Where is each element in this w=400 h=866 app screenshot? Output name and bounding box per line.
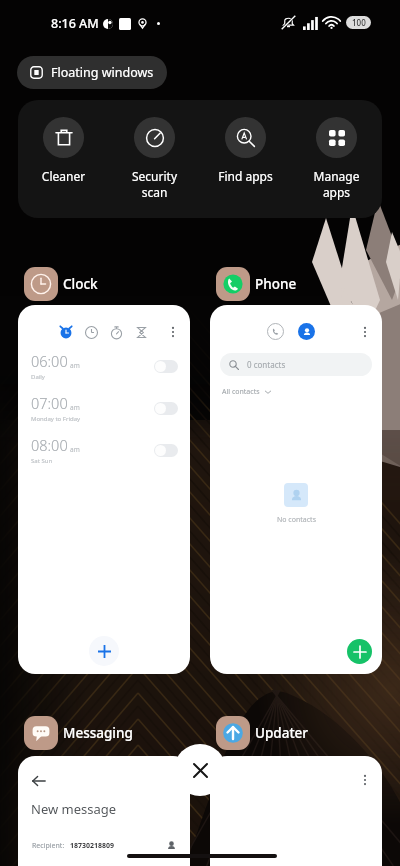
button[interactable]: Add alarm bbox=[89, 636, 119, 666]
button[interactable]: Find apps bbox=[200, 100, 291, 218]
staticText: Updater bbox=[255, 724, 309, 742]
staticText: am bbox=[70, 403, 80, 412]
button[interactable]: Add contact bbox=[347, 639, 372, 664]
staticText: No contacts bbox=[277, 515, 316, 525]
button[interactable]: All contacts bbox=[222, 387, 271, 397]
staticText: All contacts bbox=[222, 387, 260, 397]
staticText: 100 bbox=[352, 17, 366, 28]
staticText: Clock bbox=[63, 275, 98, 293]
staticText: Security scan bbox=[109, 168, 200, 201]
button[interactable]: Cleaner bbox=[18, 100, 109, 218]
button[interactable]: 08:00 bbox=[18, 429, 190, 471]
button[interactable]: 07:00 bbox=[18, 387, 190, 429]
button[interactable]: Security scan bbox=[109, 100, 200, 218]
staticText: Manage apps bbox=[291, 168, 382, 201]
staticText: Phone bbox=[255, 275, 297, 293]
staticText: Floating windows bbox=[51, 64, 154, 81]
staticText: 06:00 bbox=[31, 351, 68, 371]
button[interactable]: Close all bbox=[174, 744, 226, 796]
staticText: Messaging bbox=[63, 724, 133, 742]
button[interactable]: Updater bbox=[216, 716, 309, 750]
staticText: Recipient: bbox=[32, 841, 65, 851]
button[interactable]: 0 contacts bbox=[220, 353, 372, 376]
button[interactable]: Messaging bbox=[24, 716, 133, 750]
staticText: am bbox=[70, 445, 80, 454]
staticText: am bbox=[70, 361, 80, 370]
staticText: Sat Sun bbox=[31, 457, 53, 465]
staticText: Daily bbox=[31, 373, 45, 381]
staticText: 07:00 bbox=[31, 393, 68, 413]
button[interactable]: 06:00 bbox=[18, 345, 190, 387]
staticText: Monday to Friday bbox=[31, 415, 81, 423]
button[interactable]: Clock bbox=[24, 267, 98, 301]
staticText: 18730218809 bbox=[70, 841, 115, 851]
button[interactable]: Floating windows bbox=[17, 56, 167, 89]
staticText: New message bbox=[31, 800, 117, 818]
staticText: 8:16 AM bbox=[51, 15, 99, 32]
staticText: 0 contacts bbox=[247, 359, 286, 370]
staticText: Cleaner bbox=[18, 168, 109, 184]
button[interactable]: Phone bbox=[216, 267, 297, 301]
button[interactable]: Manage apps bbox=[291, 100, 382, 218]
staticText: Find apps bbox=[200, 168, 291, 184]
staticText: 08:00 bbox=[31, 435, 68, 455]
